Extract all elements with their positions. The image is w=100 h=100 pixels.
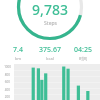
staticText: 7.4 [13, 45, 23, 55]
staticText: 600 [4, 80, 10, 84]
staticText: 9,783 [32, 0, 68, 19]
staticText: 时间 [79, 56, 87, 61]
button[interactable]: 375.67 [33, 45, 67, 61]
staticText: Steps [44, 20, 57, 27]
button[interactable]: 7.4 [2, 45, 33, 61]
staticText: kcal [46, 56, 54, 61]
staticText: 1000 [4, 65, 11, 69]
staticText: 400 [4, 88, 10, 92]
button[interactable]: 04:25 [67, 45, 98, 61]
button[interactable]: 9,783 [0, 0, 100, 41]
staticText: 800 [4, 73, 10, 77]
staticText: 200 [4, 95, 10, 99]
staticText: 375.67 [39, 45, 61, 55]
staticText: km [15, 56, 21, 61]
button[interactable]: Activity bar chart [14, 64, 100, 100]
staticText: 04:25 [74, 45, 92, 55]
